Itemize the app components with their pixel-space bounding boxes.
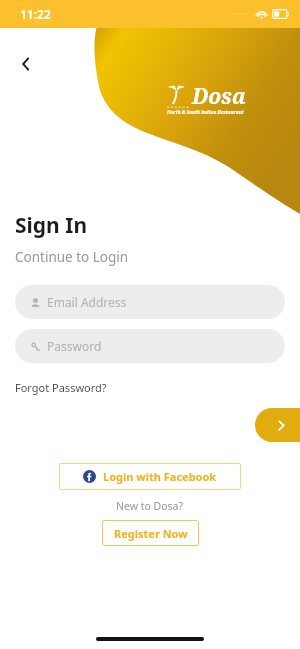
staticText: 11:22: [20, 6, 51, 22]
staticText: Forgot Password?: [15, 380, 107, 395]
button[interactable]: Back: [8, 46, 44, 82]
staticText: Login with Facebook: [103, 469, 217, 484]
button[interactable]: Email Address: [15, 285, 285, 319]
button[interactable]: Register Now: [102, 520, 199, 546]
staticText: Email Address: [47, 294, 127, 310]
staticText: Dosa: [192, 82, 246, 111]
staticText: Sign In: [15, 211, 88, 240]
button[interactable]: Password: [15, 329, 285, 363]
staticText: Password: [47, 338, 102, 354]
staticText: New to Dosa?: [116, 499, 184, 513]
staticText: Register Now: [114, 526, 188, 541]
button[interactable]: Sign in: [255, 408, 300, 442]
button[interactable]: Forgot Password?: [15, 378, 107, 397]
staticText: Continue to Login: [15, 248, 129, 266]
staticText: North & South Indian Restaurant: [167, 109, 244, 115]
button[interactable]: Login with Facebook: [59, 463, 241, 490]
